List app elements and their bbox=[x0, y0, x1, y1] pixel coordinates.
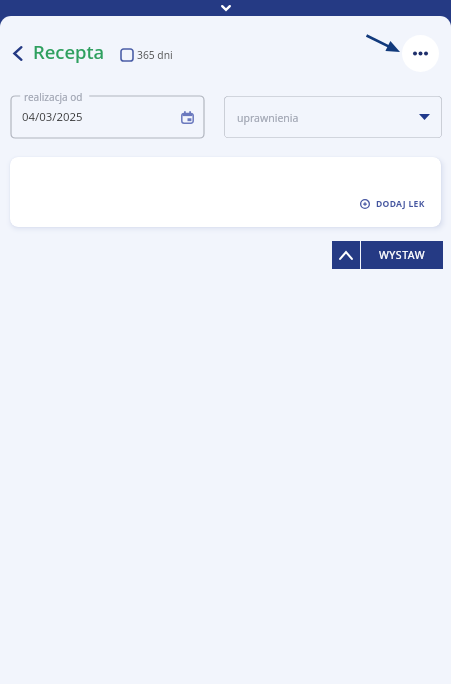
button[interactable]: More options bbox=[402, 35, 439, 72]
staticText: Recepta bbox=[33, 39, 105, 64]
button[interactable]: Collapse panel bbox=[211, 0, 241, 16]
staticText: 365 dni bbox=[137, 48, 173, 62]
staticText: DODAJ LEK bbox=[376, 198, 425, 210]
staticText: uprawnienia bbox=[237, 111, 299, 125]
staticText: realizacja od bbox=[24, 90, 83, 104]
button[interactable]: DODAJ LEK bbox=[357, 195, 428, 213]
button[interactable]: WYSTAW bbox=[361, 241, 443, 269]
staticText: 04/03/2025 bbox=[22, 109, 83, 125]
button[interactable]: Pick date bbox=[177, 107, 197, 127]
staticText: WYSTAW bbox=[379, 248, 426, 262]
button[interactable]: Expand actions bbox=[332, 241, 360, 269]
button[interactable]: 365 dni bbox=[119, 46, 175, 64]
button[interactable]: Back bbox=[7, 41, 27, 66]
button[interactable] bbox=[11, 96, 204, 138]
button[interactable]: uprawnienia bbox=[224, 96, 442, 138]
